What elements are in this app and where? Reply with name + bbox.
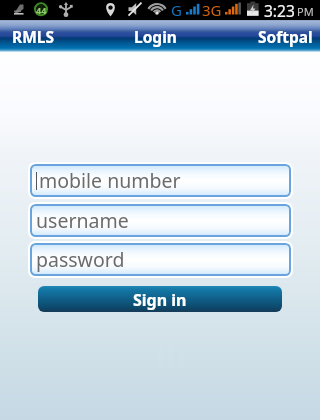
staticText: 3G	[202, 0, 222, 19]
button[interactable]: Softpal	[256, 20, 314, 52]
staticText: G	[171, 0, 182, 19]
staticText: 3:23	[264, 0, 295, 19]
button[interactable]: username	[30, 204, 291, 237]
staticText: mobile number	[39, 167, 181, 194]
button[interactable]: Login	[119, 20, 191, 52]
button[interactable]: mobile number	[30, 164, 291, 197]
staticText: password	[36, 246, 125, 273]
staticText: username	[36, 207, 129, 234]
button[interactable]: password	[30, 243, 291, 276]
staticText: Sign in	[133, 289, 187, 311]
button[interactable]: Sign in	[38, 286, 282, 312]
button[interactable]: RMLS	[0, 20, 66, 52]
staticText: PM	[297, 4, 314, 19]
staticText: RMLS	[12, 26, 54, 47]
staticText: Login	[134, 26, 177, 47]
staticText: 44	[36, 4, 47, 16]
staticText: Softpal	[258, 26, 313, 47]
